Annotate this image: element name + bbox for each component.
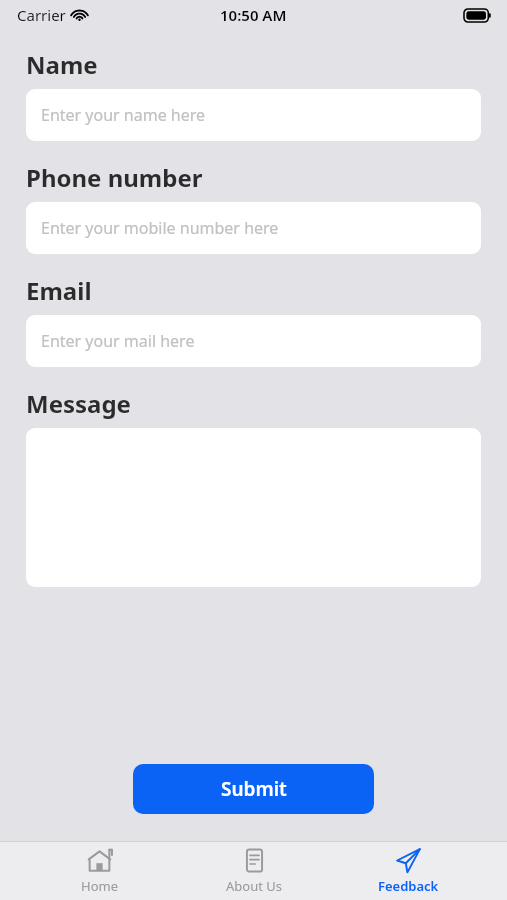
other: Feedback xyxy=(395,847,422,874)
staticText: Enter your mail here xyxy=(41,330,195,352)
staticText: Home xyxy=(81,877,118,895)
other: Home xyxy=(86,847,113,874)
staticText: Name xyxy=(26,48,98,81)
staticText: About Us xyxy=(226,877,283,895)
staticText: Feedback xyxy=(378,877,439,895)
button[interactable]: About Us xyxy=(199,843,309,899)
button[interactable]: Enter your name here xyxy=(26,89,481,141)
staticText: Phone number xyxy=(26,161,203,194)
staticText: Message xyxy=(26,387,131,420)
staticText: 10:50 AM xyxy=(220,5,287,25)
staticText: Email xyxy=(26,274,92,307)
button[interactable]: Enter your mail here xyxy=(26,315,481,367)
button[interactable]: Enter your mobile number here xyxy=(26,202,481,254)
staticText: Carrier xyxy=(17,5,66,25)
button[interactable]: Home xyxy=(44,843,154,899)
button[interactable]: Feedback xyxy=(353,843,463,899)
staticText: Enter your mobile number here xyxy=(41,217,279,239)
button[interactable]: Submit xyxy=(133,764,374,814)
staticText: Enter your name here xyxy=(41,104,206,126)
other: About Us xyxy=(241,847,268,874)
staticText: Submit xyxy=(221,776,287,802)
